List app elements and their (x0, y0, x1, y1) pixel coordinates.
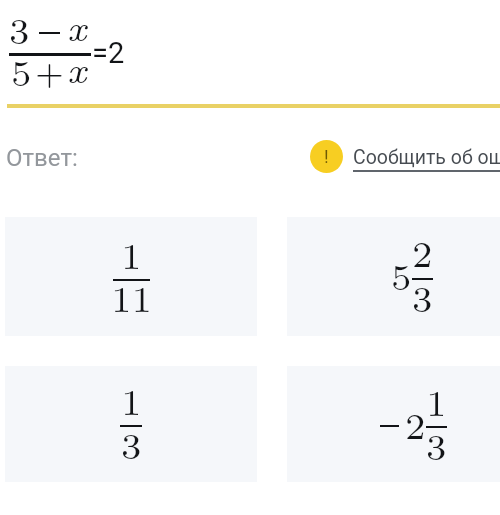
button[interactable]: 1 (5, 366, 257, 482)
staticText: 1 (121, 375, 142, 426)
staticText: 1 (426, 376, 447, 427)
staticText: Сообщить об ошибке (353, 146, 500, 169)
staticText: ! (324, 146, 329, 167)
staticText: x (67, 43, 87, 94)
staticText: 3 (426, 420, 447, 471)
staticText: 3 (121, 419, 142, 470)
staticText: 3 (9, 4, 30, 55)
other: Report an error (310, 140, 343, 173)
staticText: x (67, 1, 87, 52)
staticText: 1 (121, 229, 142, 280)
staticText: 3 (412, 272, 433, 323)
button[interactable]: 5 (287, 217, 500, 336)
button[interactable]: 2 (287, 366, 500, 482)
button[interactable]: Report an error (310, 139, 500, 173)
staticText: + (35, 47, 64, 94)
staticText: 2 (412, 227, 433, 278)
staticText: 5 (11, 46, 32, 97)
staticText: Ответ: (6, 144, 78, 172)
staticText: =2 (92, 36, 125, 70)
button[interactable]: 1 (5, 217, 257, 336)
staticText: 5 (391, 250, 412, 301)
staticText: 11 (111, 272, 152, 323)
staticText: 2 (405, 399, 426, 450)
